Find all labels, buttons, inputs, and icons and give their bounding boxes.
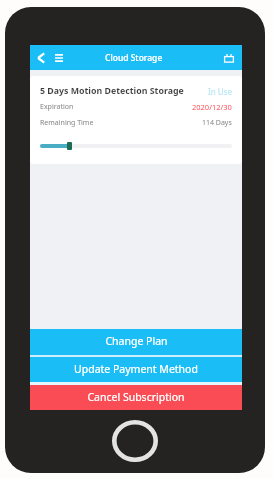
staticText: Expiration (40, 102, 74, 112)
button[interactable]: Cancel Subscription (30, 385, 242, 410)
staticText: 114 Days (202, 118, 232, 128)
other: Home (112, 420, 158, 462)
staticText: Change Plan (105, 334, 168, 348)
button[interactable]: Store (221, 50, 237, 66)
button[interactable]: Update Payment Method (30, 357, 242, 382)
staticText: Update Payment Method (74, 362, 198, 376)
staticText: 2020/12/30 (192, 102, 232, 112)
button[interactable]: Change Plan (30, 329, 242, 355)
staticText: Cancel Subscription (87, 390, 185, 404)
staticText: 5 Days Motion Detection Storage (40, 85, 184, 97)
staticText: In Use (208, 86, 232, 97)
staticText: Cloud Storage (105, 52, 163, 64)
staticText: Remaining Time (40, 118, 94, 128)
button[interactable]: Back (33, 50, 49, 66)
button[interactable]: Menu (51, 50, 67, 66)
